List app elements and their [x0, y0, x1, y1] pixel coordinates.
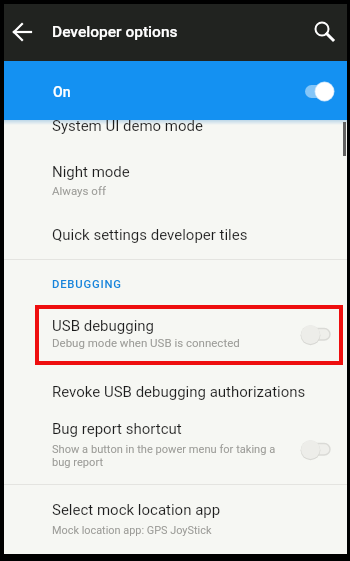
button[interactable]	[4, 14, 40, 50]
staticText: Mock location app: GPS JoyStick	[52, 524, 212, 537]
staticText: Select mock location app	[52, 501, 221, 519]
staticText: USB debugging	[52, 317, 155, 335]
staticText: Quick settings developer tiles	[52, 226, 248, 244]
staticText: On	[53, 84, 71, 100]
staticText: Developer options	[52, 23, 178, 41]
button[interactable]: Quick settings developer tiles	[4, 218, 347, 263]
staticText: Debug mode when USB is connected	[52, 336, 240, 349]
button[interactable]: System UI demo mode	[4, 122, 347, 149]
button[interactable]: USB debugging	[4, 311, 347, 363]
staticText: System UI demo mode	[52, 117, 203, 135]
button[interactable]	[305, 12, 343, 50]
button[interactable]: Revoke USB debugging authorizations	[4, 374, 347, 414]
staticText: Revoke USB debugging authorizations	[52, 383, 306, 401]
staticText: Night mode	[52, 163, 130, 181]
button[interactable]: Night mode	[4, 157, 347, 209]
staticText: Bug report shortcut	[52, 420, 182, 438]
staticText: DEBUGGING	[52, 278, 122, 291]
button[interactable]: Select mock location app	[4, 492, 347, 548]
button[interactable]: Bug report shortcut	[4, 414, 347, 479]
staticText: Show a button in the power menu for taki…	[52, 443, 276, 469]
staticText: Always off	[52, 184, 106, 197]
button[interactable]: On	[4, 61, 347, 120]
